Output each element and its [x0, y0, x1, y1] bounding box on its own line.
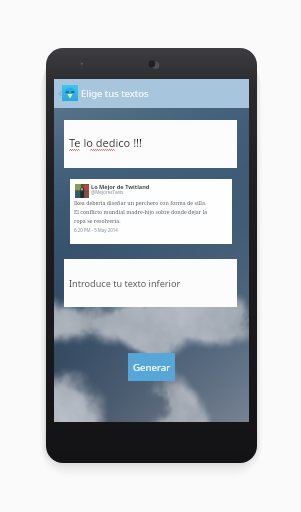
other: Navigate up [56, 89, 65, 98]
staticText: Lo Mejor de Twitland [91, 183, 150, 191]
staticText: 6:20 PM - 5 May 2014 [74, 227, 118, 233]
staticText: @MejoresTwits [91, 189, 124, 195]
staticText: Te lo dedico !!! [69, 135, 143, 150]
staticText: El conflicto mundial madre-hijo sobre do… [74, 208, 208, 215]
button[interactable]: Navigate up [54, 79, 249, 108]
staticText: ropa se resolvería. [74, 217, 121, 224]
staticText: Generar [133, 361, 171, 374]
button[interactable]: Generar [128, 353, 175, 381]
staticText: Elige tus textos [81, 87, 149, 100]
staticText: Introduce tu texto inferior [69, 277, 181, 289]
staticText: Ikea debería diseñar un perchero con for… [74, 199, 207, 206]
button[interactable]: Introduce tu texto inferior [64, 259, 237, 307]
button[interactable]: Te lo dedico !!! [64, 120, 237, 168]
